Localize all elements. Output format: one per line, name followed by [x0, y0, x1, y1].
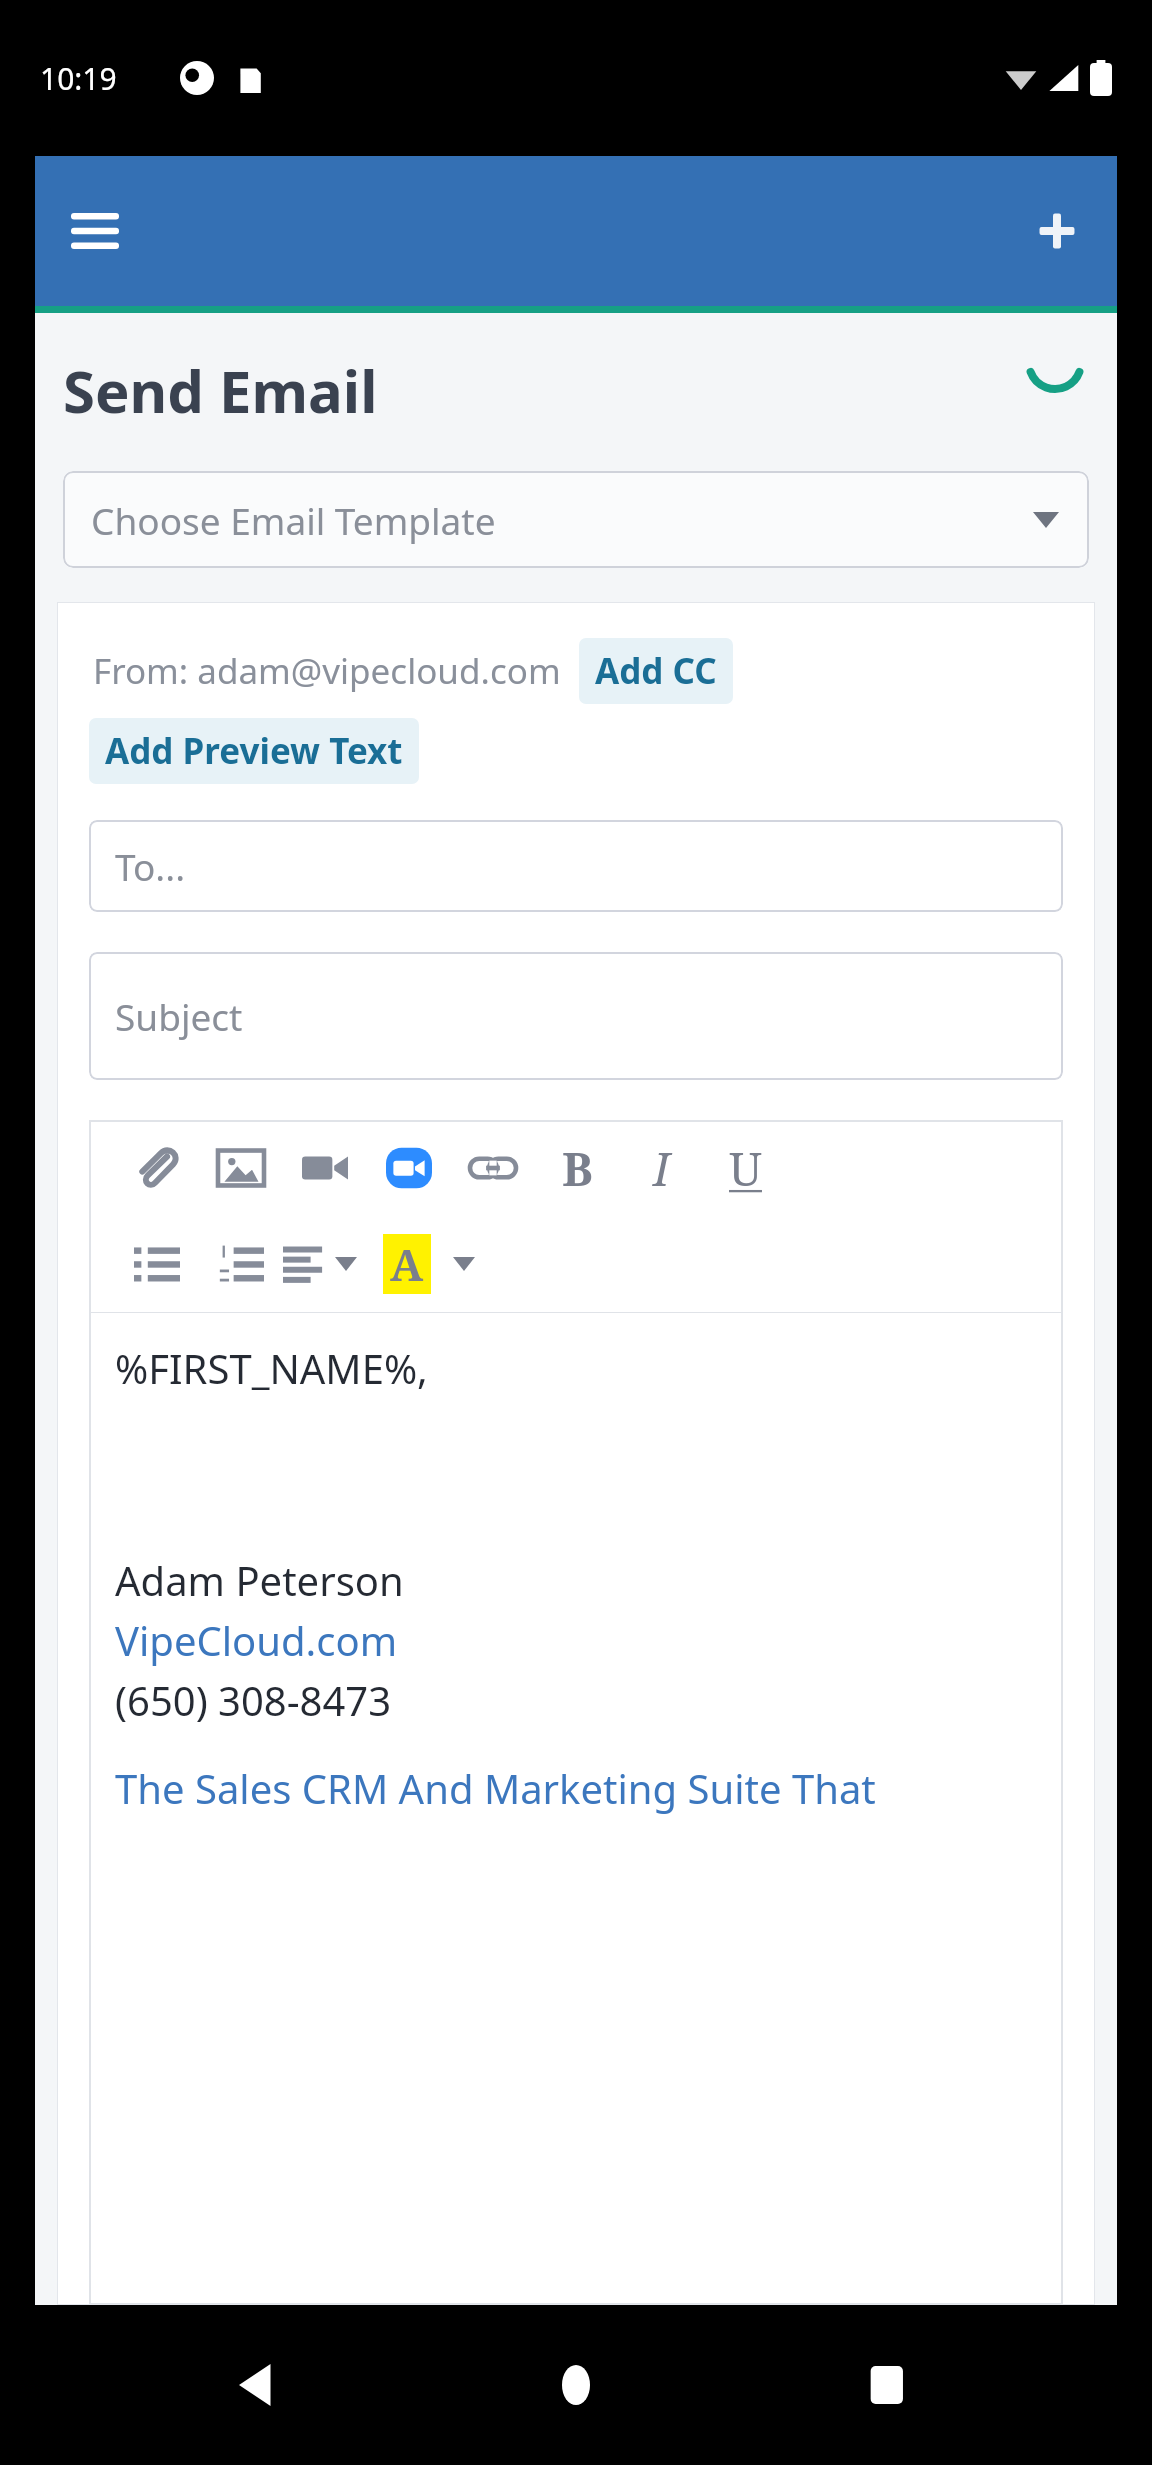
- staticText: I: [653, 1137, 670, 1200]
- staticText: B: [562, 1137, 593, 1200]
- button[interactable]: Back: [215, 2340, 305, 2430]
- staticText: Adam Peterson: [115, 1553, 404, 1607]
- staticText: %FIRST_NAME%,: [115, 1341, 428, 1395]
- button[interactable]: Zoom meeting: [367, 1126, 451, 1210]
- button[interactable]: VipeCloud.com: [115, 1613, 398, 1667]
- button[interactable]: I: [619, 1126, 703, 1210]
- button[interactable]: Align: [283, 1224, 357, 1304]
- button[interactable]: Record video: [283, 1126, 367, 1210]
- button[interactable]: Add: [1017, 191, 1097, 271]
- button[interactable]: U: [703, 1126, 787, 1210]
- button[interactable]: Insert image: [199, 1126, 283, 1210]
- staticText: A: [390, 1234, 424, 1294]
- staticText: Add Preview Text: [105, 727, 403, 775]
- staticText: Subject: [115, 991, 243, 1041]
- button[interactable]: Menu: [55, 191, 135, 271]
- staticText: Add CC: [595, 647, 717, 695]
- button[interactable]: Home: [531, 2340, 621, 2430]
- staticText: To...: [115, 841, 186, 891]
- staticText: (650) 308-8473: [115, 1673, 392, 1727]
- button[interactable]: Attach: [115, 1126, 199, 1210]
- staticText: 10:19: [40, 58, 117, 99]
- staticText: Choose Email Template: [91, 495, 496, 545]
- button[interactable]: Subject: [89, 952, 1063, 1080]
- button[interactable]: B: [535, 1126, 619, 1210]
- button[interactable]: Add CC: [579, 638, 733, 704]
- button[interactable]: Recent apps: [842, 2340, 932, 2430]
- button[interactable]: Numbered list: [199, 1222, 283, 1306]
- staticText: From: adam@vipecloud.com: [93, 647, 561, 695]
- button[interactable]: Bulleted list: [115, 1222, 199, 1306]
- button[interactable]: Insert link: [451, 1126, 535, 1210]
- button[interactable]: Text color: [383, 1224, 475, 1304]
- button[interactable]: To...: [89, 820, 1063, 912]
- button[interactable]: The Sales CRM And Marketing Suite That: [115, 1761, 876, 1815]
- button[interactable]: Choose Email Template: [63, 471, 1089, 568]
- staticText: Send Email: [63, 351, 378, 430]
- staticText: U: [729, 1137, 762, 1200]
- button[interactable]: Add Preview Text: [89, 718, 419, 784]
